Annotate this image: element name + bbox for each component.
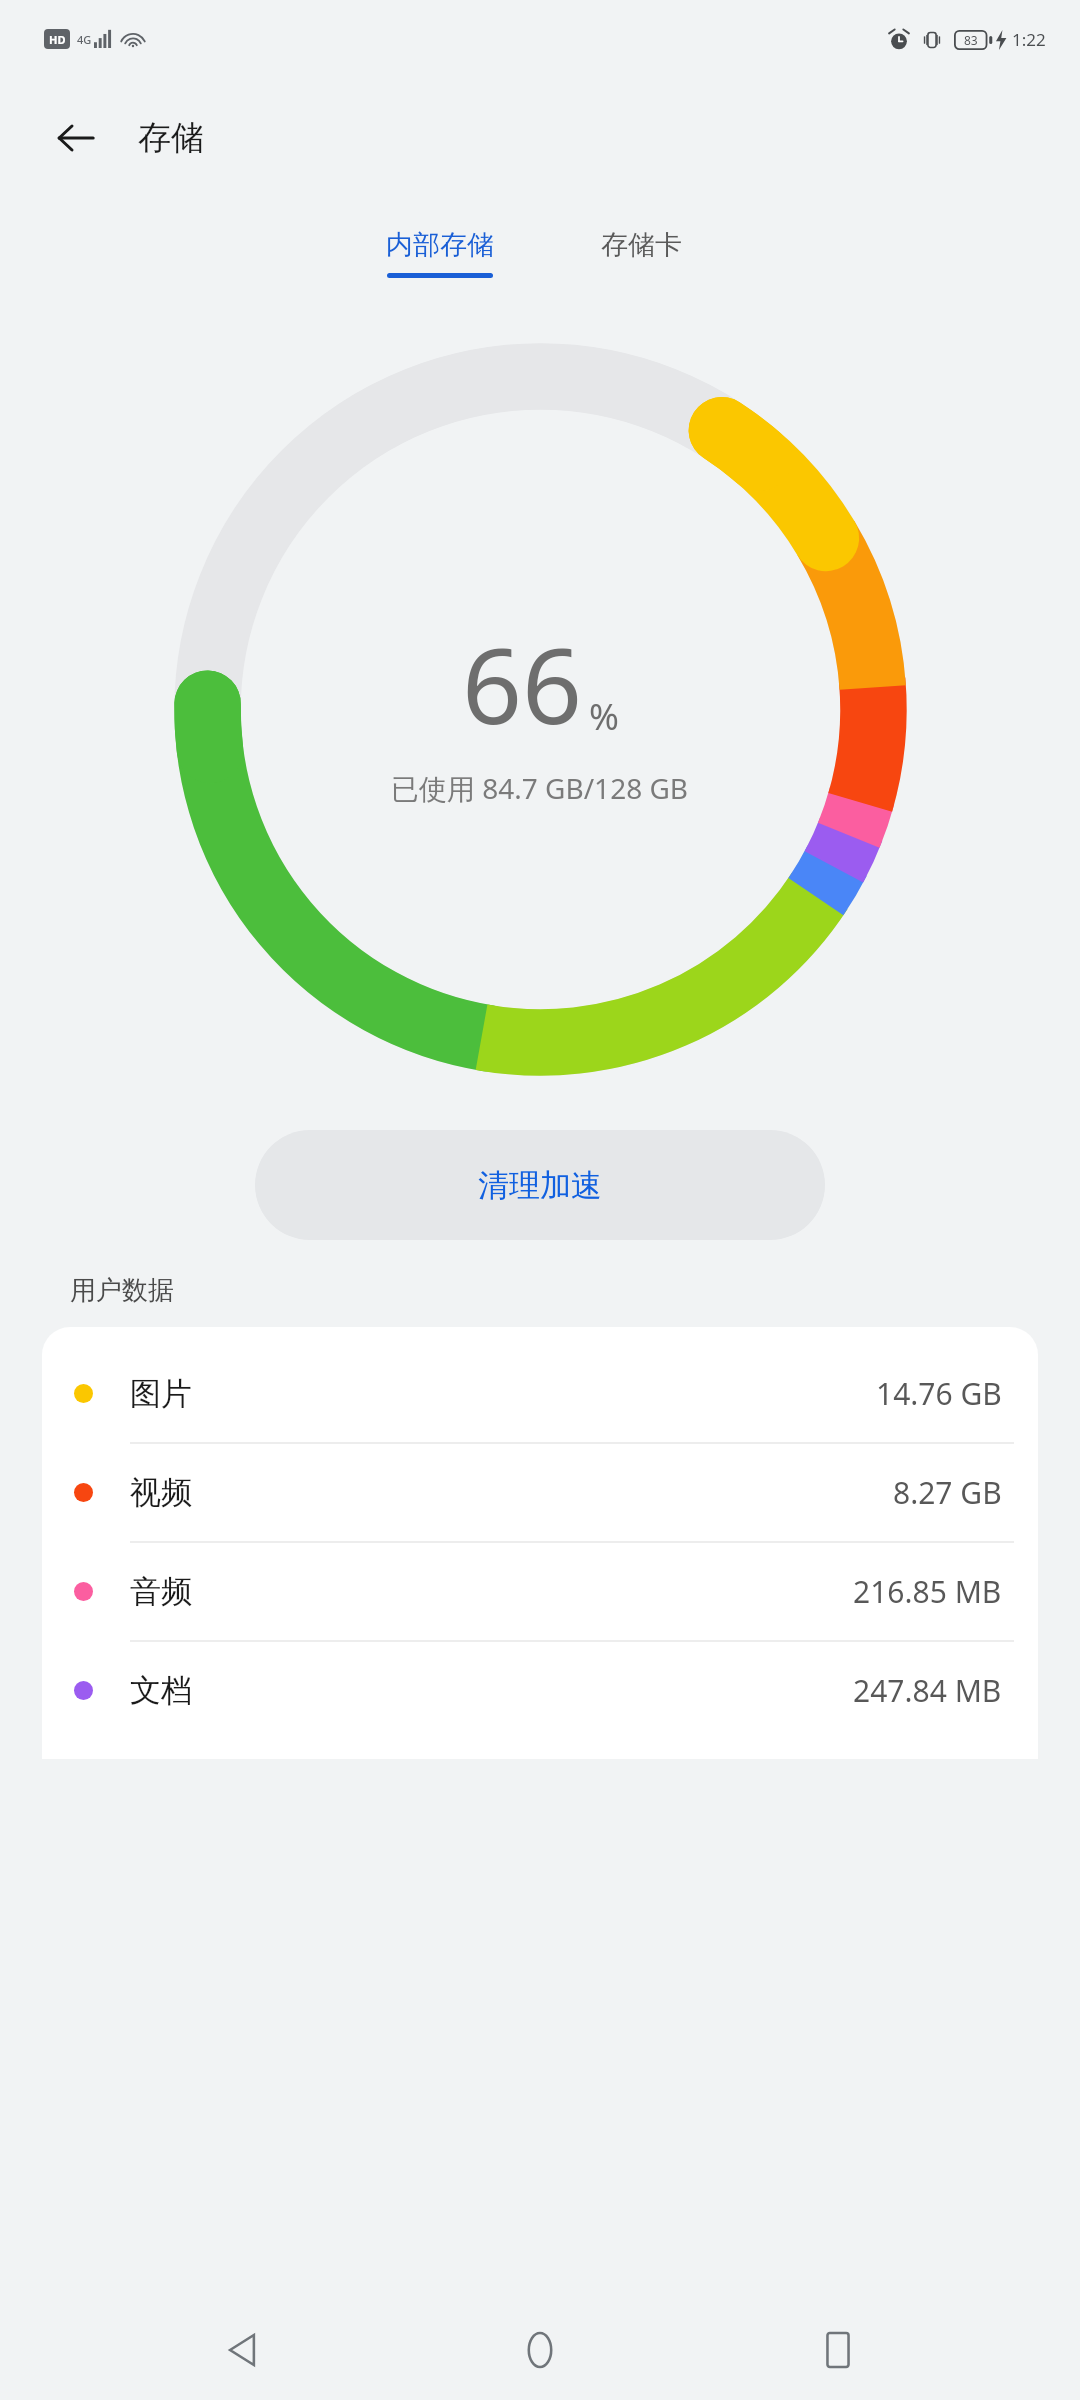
staticText: HD: [49, 32, 66, 47]
button[interactable]: 清理加速: [255, 1130, 825, 1240]
staticText: 视频: [130, 1473, 192, 1512]
staticText: 14.76 GB: [876, 1373, 1002, 1414]
staticText: 存储卡: [601, 228, 682, 262]
staticText: 4G: [77, 32, 92, 47]
staticText: 1:22: [1012, 28, 1046, 51]
staticText: 8.27 GB: [893, 1472, 1002, 1513]
button[interactable]: Recents: [783, 2300, 893, 2400]
staticText: 83: [964, 32, 978, 48]
staticText: 清理加速: [478, 1166, 602, 1205]
staticText: 图片: [130, 1374, 192, 1413]
button[interactable]: 图片: [42, 1345, 1038, 1444]
button[interactable]: 存储卡: [566, 222, 716, 284]
staticText: 247.84 MB: [853, 1670, 1002, 1711]
button[interactable]: 音频: [42, 1543, 1038, 1642]
staticText: 已使用 84.7 GB/128 GB: [391, 769, 689, 807]
staticText: 存储: [138, 117, 204, 159]
button[interactable]: Back: [38, 100, 114, 176]
staticText: 内部存储: [386, 228, 494, 262]
staticText: %: [589, 692, 619, 741]
staticText: 用户数据: [70, 1274, 174, 1307]
button[interactable]: Home: [485, 2300, 595, 2400]
button[interactable]: 内部存储: [364, 222, 516, 284]
staticText: 66: [462, 612, 583, 755]
button[interactable]: 视频: [42, 1444, 1038, 1543]
button[interactable]: 文档: [42, 1642, 1038, 1739]
button[interactable]: Back: [188, 2300, 298, 2400]
staticText: 文档: [130, 1671, 192, 1710]
staticText: 音频: [130, 1572, 192, 1611]
staticText: 216.85 MB: [853, 1571, 1002, 1612]
